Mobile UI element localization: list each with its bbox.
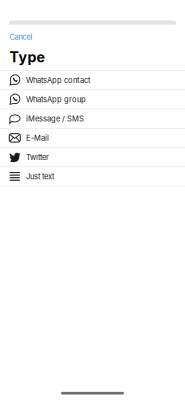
staticText: WhatsApp contact [26, 76, 90, 85]
staticText: Twitter [26, 153, 49, 162]
staticText: Just text [26, 172, 54, 181]
button[interactable]: WhatsApp group [0, 90, 185, 109]
button[interactable]: Cancel [0, 30, 36, 43]
staticText: Type [9, 48, 44, 66]
staticText: Cancel [9, 32, 32, 41]
button[interactable]: Twitter [0, 148, 185, 167]
button[interactable]: Just text [0, 167, 185, 186]
button[interactable]: iMessage / SMS [0, 109, 185, 128]
staticText: WhatsApp group [26, 95, 86, 104]
staticText: E-Mail [26, 133, 49, 142]
staticText: iMessage / SMS [26, 114, 84, 123]
button[interactable]: WhatsApp contact [0, 71, 185, 90]
button[interactable]: E-Mail [0, 129, 185, 148]
